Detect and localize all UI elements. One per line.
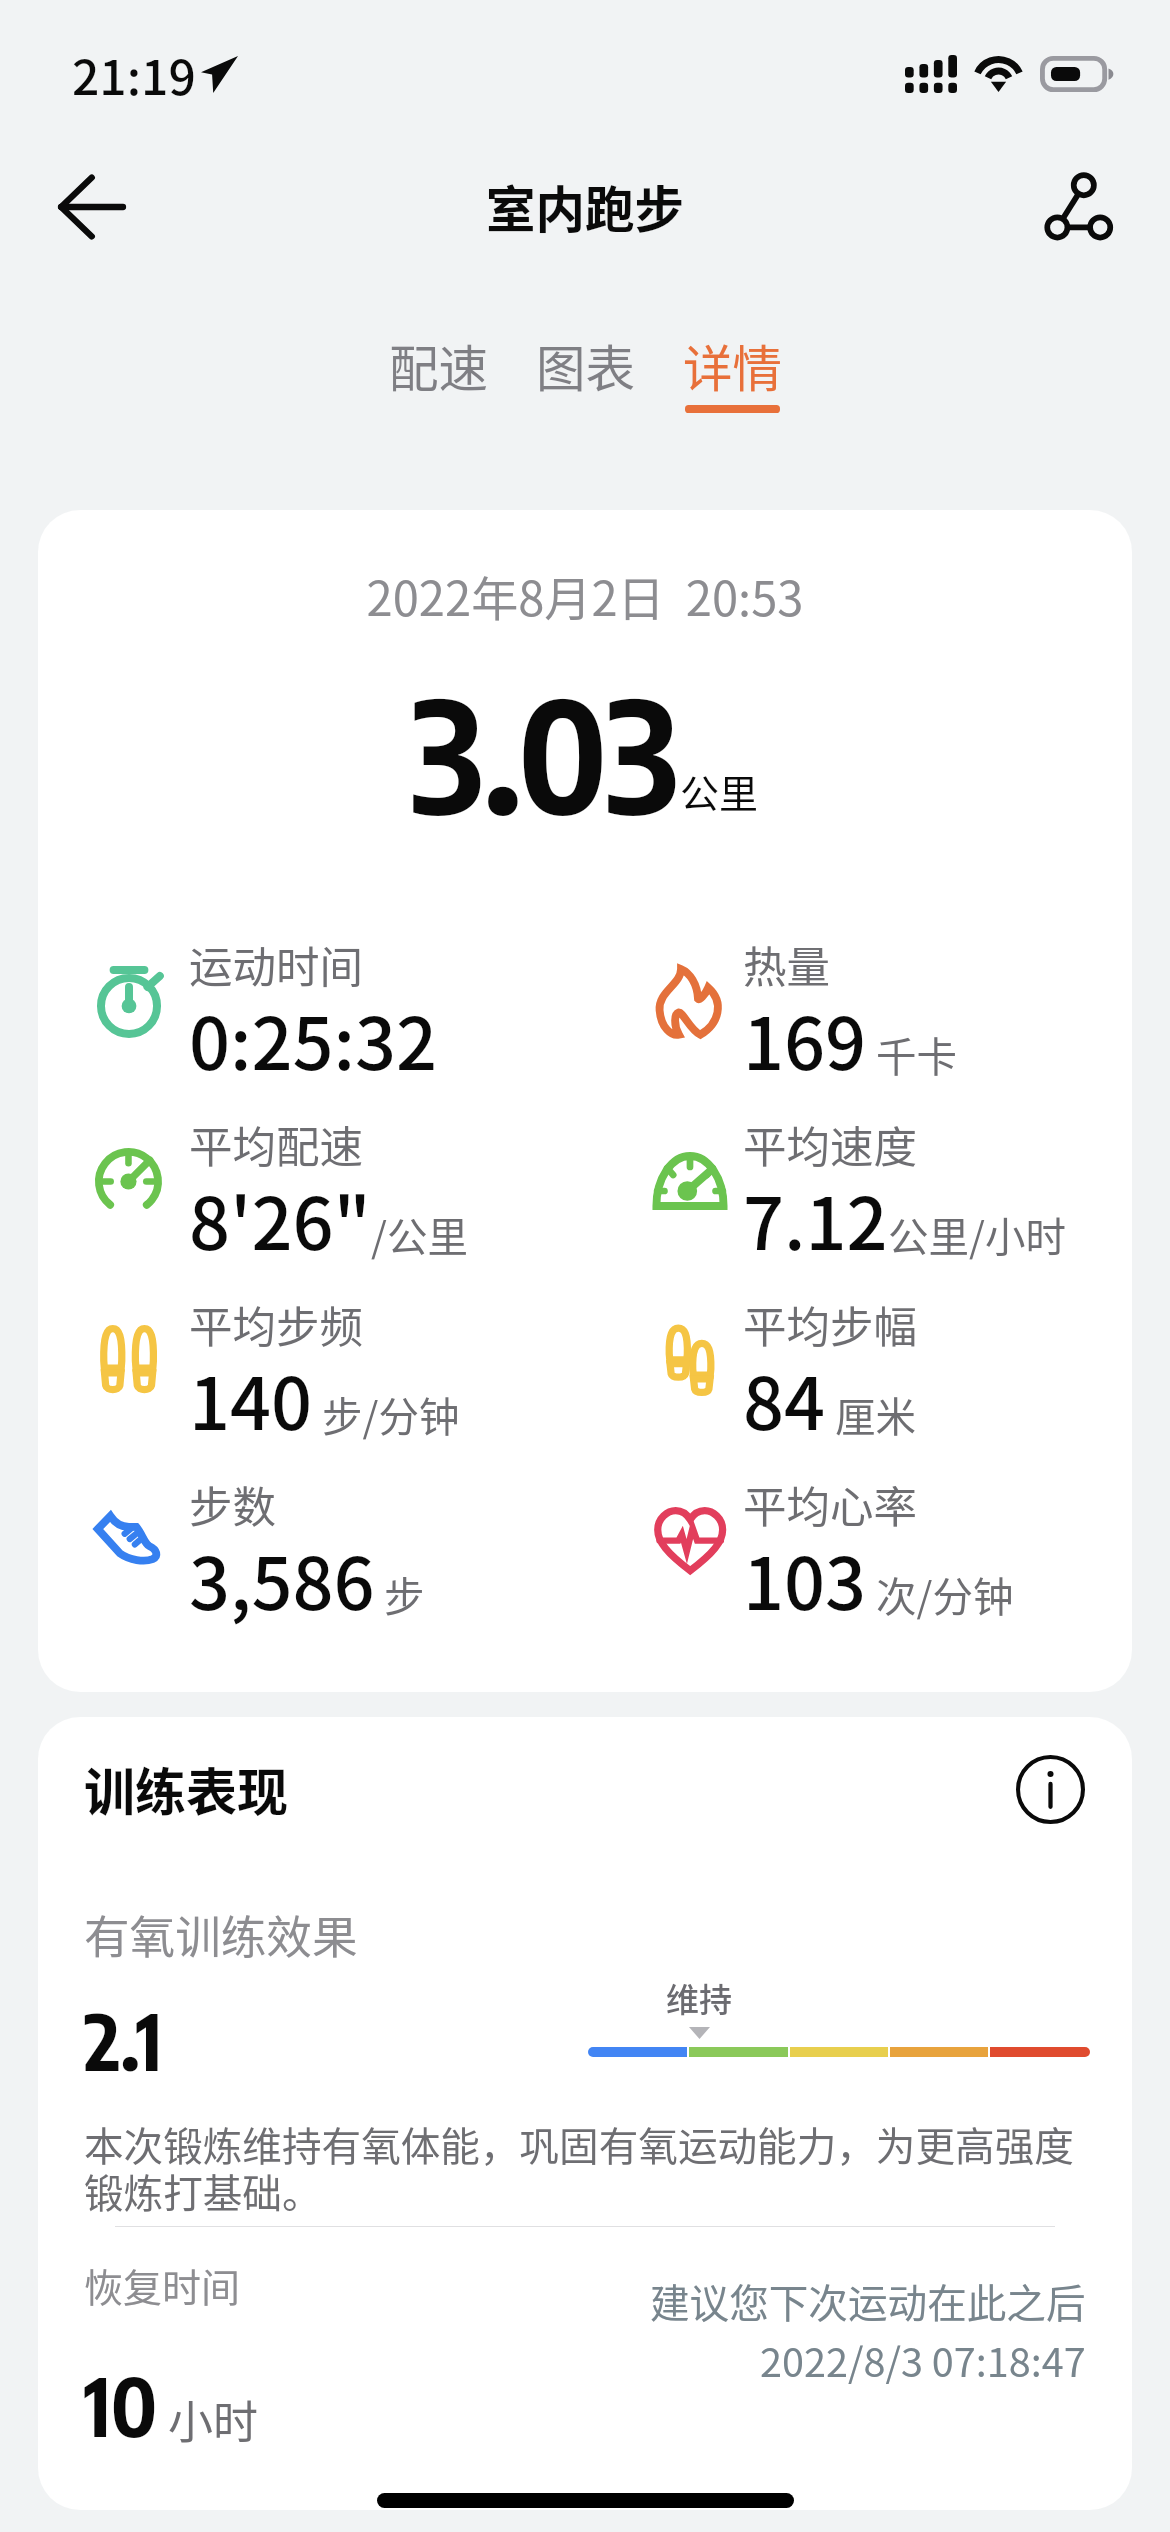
button[interactable]: 详情 [659, 267, 806, 413]
staticText: 小时 [158, 2387, 259, 2452]
button[interactable]: 配速 [365, 267, 512, 413]
staticText: 千卡 [867, 1025, 958, 1084]
staticText: 公里 [680, 763, 759, 819]
button[interactable]: Share [1026, 156, 1128, 258]
staticText: 次/分钟 [867, 1565, 1014, 1624]
staticText: 84 [743, 1346, 826, 1450]
staticText: 21:19 [72, 39, 196, 109]
staticText: 厘米 [826, 1385, 917, 1444]
button[interactable]: Info [1011, 1750, 1089, 1828]
staticText: 平均配速 [189, 1113, 363, 1176]
staticText: 恢复时间 [84, 2257, 241, 2313]
staticText: 140 [189, 1346, 313, 1450]
staticText: 3.03 [411, 656, 680, 849]
staticText: 训练表现 [84, 1752, 289, 1826]
staticText: 2.1 [84, 1991, 163, 2088]
staticText: 建议您下次运动在此之后 [650, 2272, 1086, 2329]
staticText: 图表 [536, 330, 635, 402]
staticText: 运动时间 [189, 933, 363, 996]
staticText: 有氧训练效果 [84, 1901, 358, 1967]
button[interactable]: Back [39, 156, 141, 258]
button[interactable]: 图表 [512, 267, 659, 413]
staticText: 8'26" [189, 1166, 371, 1270]
staticText: 本次锻炼维持有氧体能，巩固有氧运动能力，为更高强度锻炼打基础。 [84, 2115, 1086, 2219]
staticText: 平均速度 [743, 1113, 917, 1176]
staticText: 7.12 [743, 1166, 888, 1270]
staticText: 3,586 [189, 1526, 375, 1630]
staticText: 平均心率 [743, 1473, 917, 1536]
staticText: 平均步频 [189, 1293, 363, 1356]
staticText: 热量 [743, 933, 830, 996]
staticText: 平均步幅 [743, 1293, 917, 1356]
staticText: 公里/小时 [888, 1205, 1066, 1264]
staticText: 步 [375, 1565, 425, 1624]
staticText: 室内跑步 [486, 171, 684, 243]
staticText: 2022年8月2日 20:53 [38, 561, 1132, 629]
staticText: 169 [743, 986, 867, 1090]
staticText: /公里 [371, 1205, 468, 1264]
staticText: 10 [84, 2355, 158, 2455]
staticText: 配速 [389, 330, 488, 402]
staticText: 步数 [189, 1473, 276, 1536]
staticText: 步/分钟 [313, 1385, 460, 1444]
staticText: 详情 [683, 330, 782, 402]
staticText: 2022/8/3 07:18:47 [760, 2331, 1086, 2388]
staticText: 0:25:32 [189, 986, 438, 1090]
staticText: 维持 [666, 1974, 732, 2022]
staticText: 103 [743, 1526, 867, 1630]
